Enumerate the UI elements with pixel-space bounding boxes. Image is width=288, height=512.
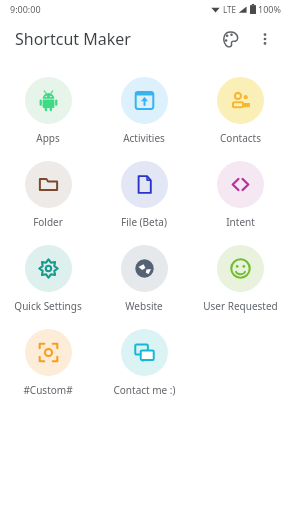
staticText: User Requested: [203, 299, 278, 313]
button[interactable]: Intent: [192, 158, 288, 242]
button[interactable]: Quick Settings: [0, 242, 96, 326]
button[interactable]: Folder: [0, 158, 96, 242]
button[interactable]: More options: [248, 22, 282, 56]
staticText: LTE: [223, 4, 236, 15]
staticText: #Custom#: [23, 383, 73, 397]
staticText: Contact me :): [113, 383, 176, 397]
staticText: Intent: [226, 215, 255, 229]
button[interactable]: #Custom#: [0, 326, 96, 410]
staticText: 9:00:00: [10, 3, 41, 15]
button[interactable]: Activities: [96, 74, 192, 158]
staticText: Website: [125, 299, 163, 313]
staticText: Quick Settings: [14, 299, 82, 313]
button[interactable]: Contacts: [192, 74, 288, 158]
staticText: Shortcut Maker: [15, 28, 131, 50]
button[interactable]: Theme palette: [212, 21, 248, 57]
button[interactable]: Apps: [0, 74, 96, 158]
staticText: Apps: [36, 131, 60, 145]
staticText: 100%: [258, 3, 281, 15]
staticText: Contacts: [220, 131, 261, 145]
staticText: Folder: [33, 215, 63, 229]
button[interactable]: Website: [96, 242, 192, 326]
button[interactable]: File (Beta): [96, 158, 192, 242]
button[interactable]: User Requested: [192, 242, 288, 326]
button[interactable]: Contact me :): [96, 326, 192, 410]
staticText: Activities: [123, 131, 165, 145]
staticText: File (Beta): [121, 215, 167, 229]
